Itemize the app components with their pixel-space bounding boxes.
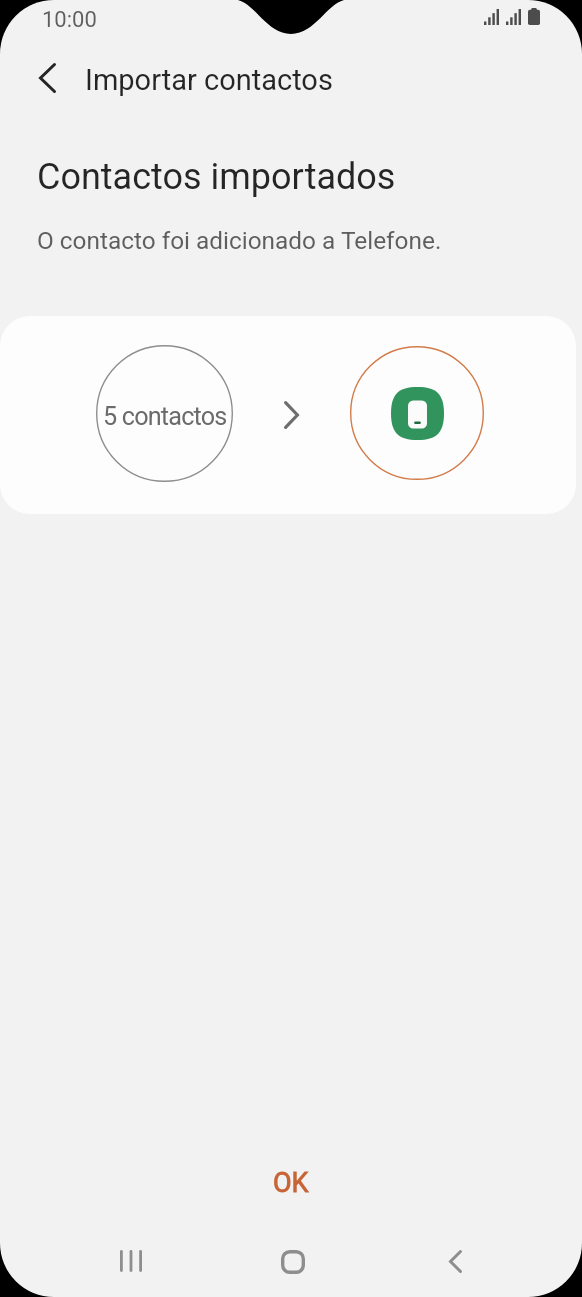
button[interactable]: Back [419,1226,492,1297]
button[interactable]: Back [25,56,69,100]
staticText: O contacto foi adicionado a Telefone. [37,226,442,255]
button[interactable]: Home [256,1226,329,1297]
staticText: OK [273,1167,309,1199]
button[interactable]: Recent apps [94,1225,167,1296]
staticText: 5 contactos [103,402,227,432]
button[interactable]: OK [0,1152,582,1214]
staticText: Importar contactos [85,63,333,97]
staticText: Contactos importados [37,156,396,198]
staticText: 10:00 [42,7,97,33]
